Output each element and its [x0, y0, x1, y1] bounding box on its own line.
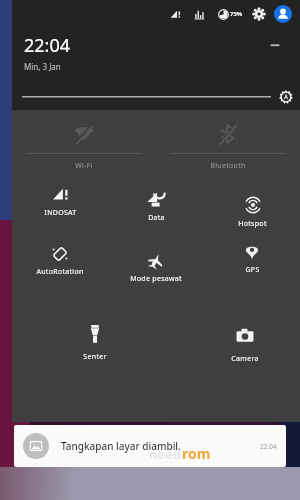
- button[interactable]: Airplane mode: [127, 251, 185, 286]
- button[interactable]: Wi-Fi: [12, 110, 156, 182]
- staticText: GPS: [245, 265, 260, 275]
- button[interactable]: Mobile data: [144, 188, 168, 225]
- button[interactable]: Camera: [228, 325, 262, 366]
- staticText: Data: [148, 213, 165, 223]
- staticText: 22.04: [260, 442, 277, 451]
- staticText: Mode pesawat: [130, 274, 182, 284]
- staticText: AutoRotation: [36, 267, 84, 277]
- staticText: need: [149, 445, 182, 463]
- button[interactable]: Brightness: [22, 90, 271, 104]
- staticText: Senter: [83, 352, 107, 362]
- button[interactable]: Hotspot: [235, 194, 270, 231]
- button[interactable]: Auto brightness: [279, 90, 293, 104]
- staticText: Hotspot: [238, 219, 267, 229]
- button[interactable]: Bluetooth: [156, 110, 300, 182]
- button[interactable]: INDOSAT: [41, 184, 80, 220]
- staticText: Bluetooth: [210, 161, 246, 171]
- staticText: Camera: [231, 354, 259, 364]
- button[interactable]: User profile: [274, 5, 292, 23]
- staticText: rom: [182, 444, 211, 463]
- staticText: Min, 3 Jan: [24, 61, 61, 72]
- button[interactable]: Tangkapan layar diambil.: [14, 425, 286, 467]
- staticText: Wi-Fi: [75, 161, 93, 171]
- button[interactable]: GPS: [241, 242, 263, 277]
- button[interactable]: Settings: [253, 8, 265, 20]
- staticText: INDOSAT: [44, 208, 77, 218]
- staticText: 22:04: [24, 33, 71, 58]
- staticText: 75%: [230, 10, 243, 18]
- button[interactable]: Flashlight: [80, 322, 110, 364]
- button[interactable]: Collapse panel: [268, 40, 282, 50]
- staticText: Tangkapan layar diambil.: [61, 439, 181, 453]
- button[interactable]: Auto rotation: [33, 244, 87, 279]
